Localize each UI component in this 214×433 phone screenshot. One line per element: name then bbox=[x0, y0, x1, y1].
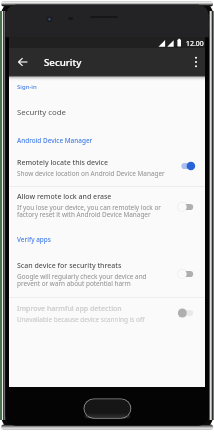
button[interactable]: Sign-in bbox=[9, 81, 205, 93]
staticText: Security bbox=[44, 56, 82, 69]
staticText: prevent or warn about potential harm bbox=[17, 279, 131, 288]
button[interactable]: Improve harmful app detection bbox=[9, 300, 205, 326]
staticText: Show device location on Android Device M… bbox=[17, 169, 165, 178]
button[interactable]: More options bbox=[188, 54, 204, 70]
button[interactable]: Navigate up bbox=[15, 54, 31, 70]
staticText: Improve harmful app detection bbox=[17, 304, 122, 314]
button[interactable]: Toggle setting bbox=[172, 306, 198, 320]
button[interactable]: Toggle setting bbox=[172, 159, 198, 173]
button[interactable]: Remotely locate this device bbox=[9, 154, 205, 181]
staticText: Remotely locate this device bbox=[17, 158, 109, 168]
staticText: 12.00 bbox=[186, 39, 204, 48]
staticText: Scan device for security threats bbox=[17, 261, 122, 271]
staticText: Android Device Manager bbox=[17, 136, 93, 145]
button[interactable]: Toggle setting bbox=[172, 200, 198, 214]
button[interactable]: Security code bbox=[9, 101, 205, 123]
staticText: Verify apps bbox=[17, 235, 51, 244]
staticText: Allow remote lock and erase bbox=[17, 192, 112, 202]
staticText: Google will regularly check your device … bbox=[17, 272, 147, 281]
staticText: Security code bbox=[17, 107, 66, 118]
button[interactable]: Scan device for security threats bbox=[9, 257, 205, 290]
staticText: Sign-in bbox=[17, 83, 37, 91]
button[interactable]: Verify apps bbox=[9, 233, 205, 245]
staticText: factory reset it with Android Device Man… bbox=[17, 210, 151, 219]
staticText: If you lose your device, you can remotel… bbox=[17, 203, 161, 212]
button[interactable]: Android Device Manager bbox=[9, 134, 205, 146]
button[interactable]: Allow remote lock and erase bbox=[9, 188, 205, 222]
staticText: Unavailable because device scanning is o… bbox=[17, 315, 145, 324]
button[interactable]: Toggle setting bbox=[172, 267, 198, 281]
